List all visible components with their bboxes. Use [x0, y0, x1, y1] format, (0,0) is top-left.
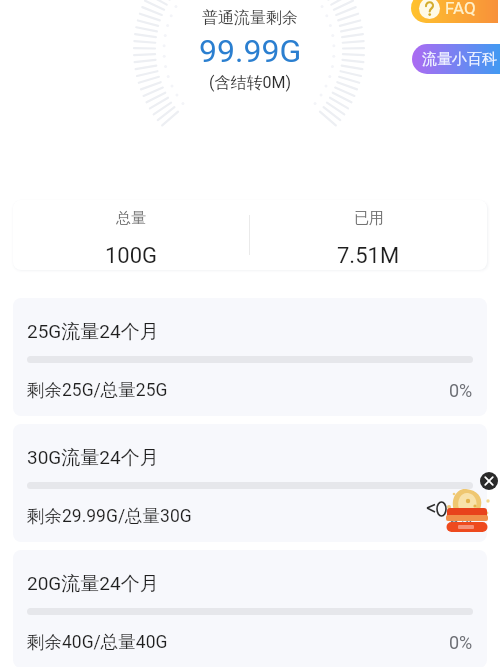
staticText: 30G流量24个月	[27, 446, 159, 470]
staticText: 总量	[116, 209, 146, 228]
staticText: 剩余25G/总量25G	[27, 379, 168, 401]
staticText: 20G流量24个月	[27, 572, 159, 596]
staticText: 0%	[449, 380, 473, 401]
staticText: FAQ	[445, 0, 476, 18]
staticText: 7.51M	[337, 243, 400, 269]
button[interactable]: 已用	[250, 200, 487, 270]
button[interactable]: 20G流量24个月	[13, 550, 487, 667]
staticText: 100G	[105, 243, 158, 269]
staticText: (含结转0M)	[209, 73, 292, 93]
button[interactable]: 流量小百科	[412, 44, 500, 74]
button[interactable]: 25G流量24个月	[13, 298, 487, 416]
staticText: 已用	[354, 209, 384, 228]
button[interactable]: 30G流量24个月	[13, 424, 487, 542]
staticText: 25G流量24个月	[27, 320, 159, 344]
button[interactable]: FAQ	[411, 0, 498, 23]
button[interactable]: Close advertisement	[480, 472, 498, 490]
staticText: 剩余29.99G/总量30G	[27, 505, 192, 527]
staticText: 剩余40G/总量40G	[27, 631, 168, 653]
button[interactable]: 总量	[13, 200, 249, 270]
staticText: 99.99G	[199, 32, 302, 70]
staticText: 0%	[449, 506, 473, 527]
staticText: 普通流量剩余	[202, 8, 298, 28]
staticText: 0%	[449, 632, 473, 653]
button[interactable]: Promotion offer	[426, 486, 490, 534]
staticText: 流量小百科	[422, 50, 497, 69]
